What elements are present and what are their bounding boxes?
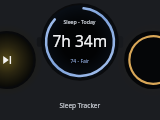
button[interactable]: Activity rings watch face (104, 32, 160, 88)
button[interactable] (0, 96, 160, 120)
button[interactable] (40, 0, 120, 80)
button[interactable]: Media controls watch face (0, 32, 56, 88)
